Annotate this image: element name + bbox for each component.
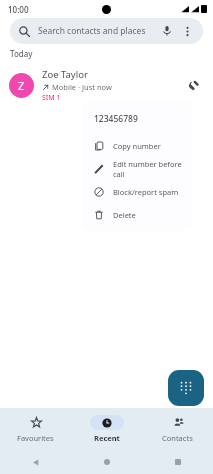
staticText: Favourites bbox=[17, 433, 54, 443]
button[interactable]: Contacts bbox=[142, 408, 213, 450]
button[interactable]: Favourites bbox=[0, 408, 71, 450]
button[interactable]: Block/report spam bbox=[82, 180, 193, 203]
button[interactable]: Dialpad bbox=[168, 370, 204, 406]
staticText: Block/report spam bbox=[113, 187, 179, 197]
staticText: Contacts bbox=[162, 433, 193, 443]
staticText: Zoe Taylor bbox=[42, 68, 88, 81]
button[interactable]: Call back bbox=[182, 74, 204, 96]
button[interactable]: Recents bbox=[142, 450, 213, 474]
button[interactable]: Edit number before call bbox=[82, 157, 193, 180]
staticText: Recent bbox=[94, 433, 120, 443]
button[interactable]: Copy number bbox=[82, 134, 193, 157]
staticText: 123456789 bbox=[94, 113, 138, 125]
button[interactable]: Voice search bbox=[160, 24, 174, 38]
button[interactable]: More options bbox=[180, 24, 194, 38]
button[interactable]: Recent bbox=[71, 408, 142, 450]
staticText: Delete bbox=[113, 210, 136, 220]
staticText: Copy number bbox=[113, 141, 161, 151]
staticText: Today bbox=[10, 48, 33, 59]
staticText: 10:00 bbox=[8, 4, 29, 15]
staticText: Z bbox=[18, 78, 25, 93]
staticText: Search contacts and places bbox=[38, 25, 146, 37]
button[interactable]: Home bbox=[71, 450, 142, 474]
button[interactable]: Search contacts and places bbox=[10, 18, 203, 44]
button[interactable]: Z bbox=[0, 65, 213, 105]
button[interactable]: Back bbox=[0, 450, 71, 474]
button[interactable]: Delete bbox=[82, 203, 193, 226]
staticText: Mobile · Just now bbox=[52, 82, 112, 92]
staticText: SIM 1 bbox=[42, 93, 61, 103]
staticText: Edit number before call bbox=[113, 159, 193, 179]
